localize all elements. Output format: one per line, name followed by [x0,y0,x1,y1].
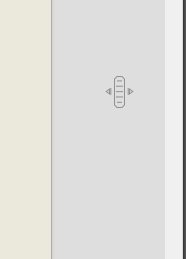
button[interactable]: Resize split view [0,0,186,259]
